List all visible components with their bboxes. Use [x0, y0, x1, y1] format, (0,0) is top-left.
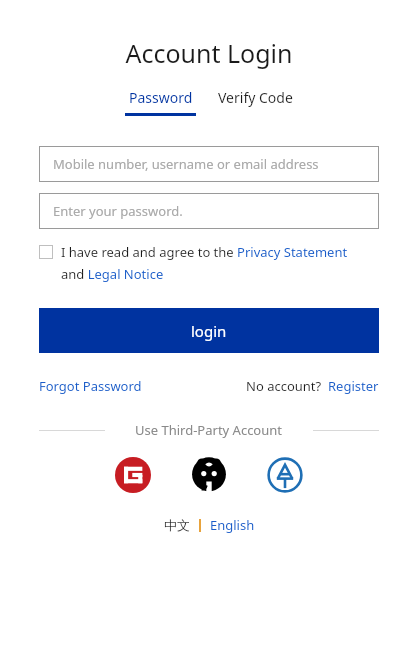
staticText: Register: [328, 377, 379, 395]
staticText: Password: [129, 88, 193, 107]
button[interactable]: Sign in with Gitee: [114, 456, 152, 494]
button[interactable]: Register: [328, 377, 379, 395]
staticText: Forgot Password: [39, 377, 142, 395]
button[interactable]: English: [210, 516, 255, 534]
button[interactable]: Agree to terms: [39, 245, 53, 259]
button[interactable]: Sign in with Atomgit: [266, 456, 304, 494]
button[interactable]: login: [39, 308, 379, 353]
staticText: Account Login: [125, 36, 293, 70]
button[interactable]: Enter your password.: [39, 193, 379, 229]
button[interactable]: Forgot Password: [39, 377, 142, 395]
staticText: login: [191, 321, 227, 341]
button[interactable]: Sign in with GitHub: [190, 456, 228, 494]
button[interactable]: Password: [121, 88, 200, 116]
button[interactable]: Verify Code: [214, 88, 297, 107]
staticText: 中文: [164, 517, 190, 533]
staticText: Verify Code: [218, 88, 293, 107]
staticText: Enter your password.: [53, 202, 183, 220]
staticText: and Legal Notice: [61, 265, 164, 283]
button[interactable]: Mobile number, username or email address: [39, 146, 379, 182]
staticText: English: [210, 516, 255, 534]
staticText: Mobile number, username or email address: [53, 155, 319, 173]
staticText: Use Third-Party Account: [135, 421, 282, 439]
button[interactable]: 中文: [164, 517, 190, 533]
staticText: No account?: [246, 377, 322, 395]
staticText: I have read and agree to the Privacy Sta…: [61, 243, 348, 261]
